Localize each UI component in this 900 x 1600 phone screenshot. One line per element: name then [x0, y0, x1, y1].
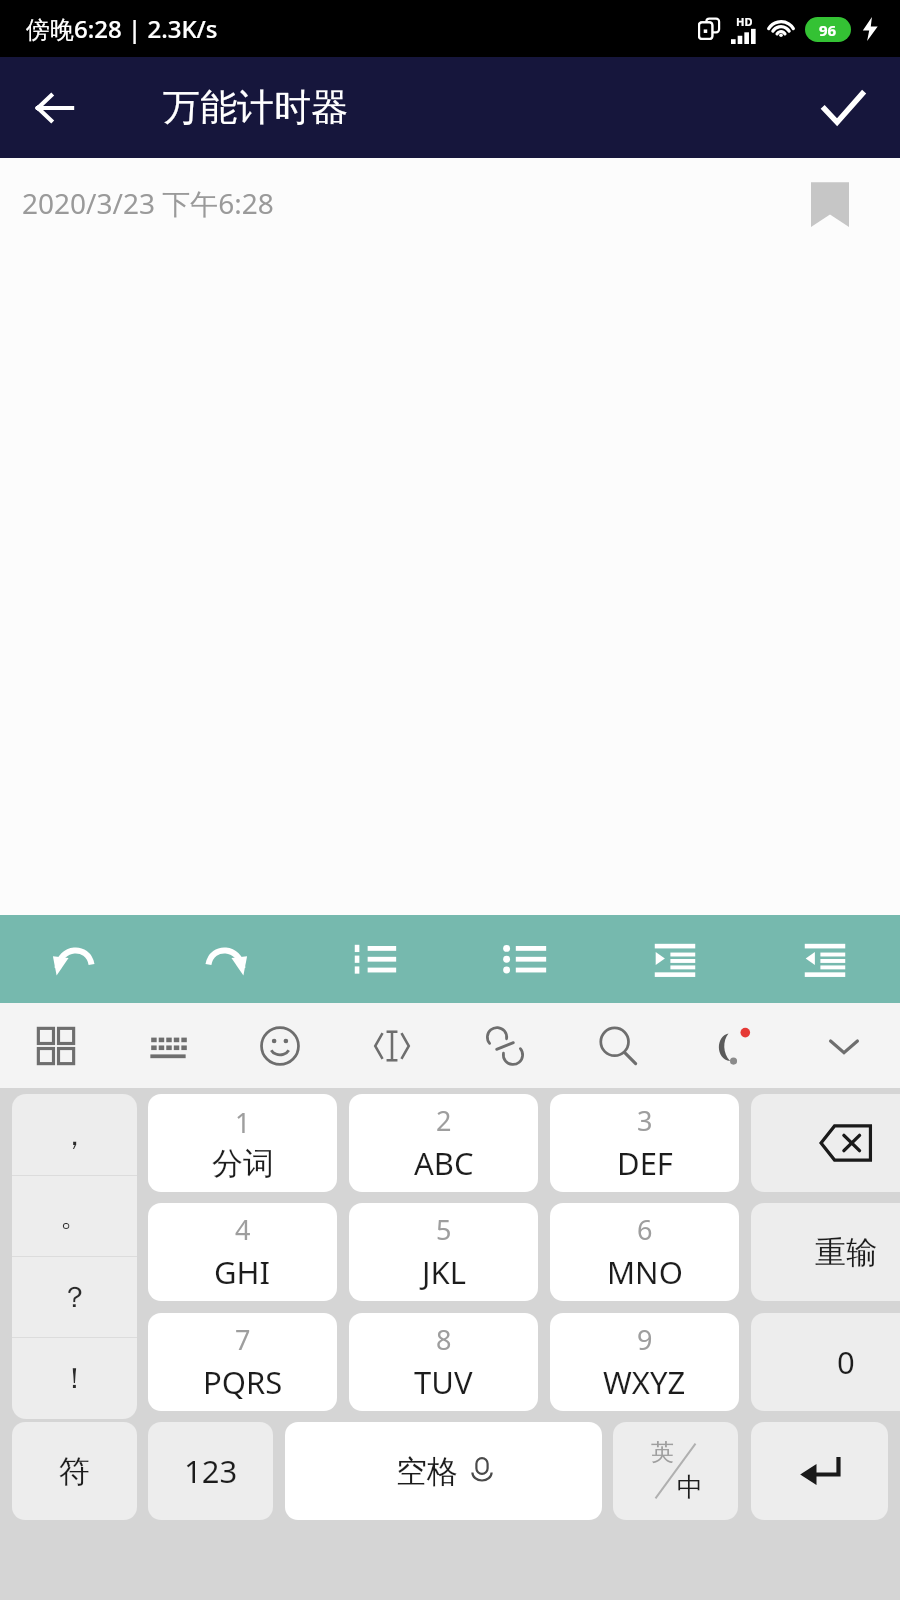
button[interactable]: Bookmark	[800, 173, 860, 233]
staticText: JKL	[422, 1251, 466, 1293]
staticText: 123	[184, 1450, 238, 1492]
staticText: 1	[235, 1104, 251, 1141]
button[interactable]: 符	[12, 1422, 137, 1520]
button[interactable]: Hide keyboard	[787, 1003, 900, 1088]
button[interactable]: 3	[550, 1094, 739, 1192]
button[interactable]: Bullet list	[450, 915, 600, 1003]
button[interactable]: 4	[148, 1203, 337, 1301]
button[interactable]: 9	[550, 1313, 739, 1411]
button[interactable]: Back	[20, 73, 90, 143]
staticText: MNO	[607, 1251, 683, 1293]
staticText: 英	[651, 1438, 674, 1467]
button[interactable]: 8	[349, 1313, 538, 1411]
staticText: 5	[436, 1211, 452, 1248]
staticText: GHI	[214, 1251, 271, 1293]
staticText: DEF	[617, 1142, 673, 1184]
button[interactable]: Clipboard	[448, 1003, 561, 1088]
staticText: ABC	[414, 1142, 474, 1184]
staticText: 96	[819, 20, 837, 40]
button[interactable]: ？	[12, 1257, 137, 1338]
staticText: 重输	[815, 1233, 877, 1272]
staticText: 8	[436, 1321, 452, 1358]
staticText: 中	[677, 1471, 703, 1504]
staticText: 空格	[396, 1452, 458, 1491]
button[interactable]: 5	[349, 1203, 538, 1301]
staticText: 符	[59, 1452, 90, 1491]
button[interactable]: 空格	[285, 1422, 602, 1520]
staticText: 傍晚6:28 | 2.3K/s	[26, 12, 218, 45]
button[interactable]: 0	[751, 1313, 900, 1411]
button[interactable]: Indent	[600, 915, 750, 1003]
button[interactable]: Search	[561, 1003, 674, 1088]
button[interactable]: Redo	[150, 915, 300, 1003]
button[interactable]: 7	[148, 1313, 337, 1411]
button[interactable]: ，	[12, 1094, 137, 1176]
staticText: WXYZ	[603, 1361, 686, 1403]
staticText: 2	[436, 1102, 452, 1139]
staticText: HD	[736, 14, 753, 29]
staticText: TUV	[414, 1361, 473, 1403]
button[interactable]: Night mode	[674, 1003, 787, 1088]
staticText: ？	[60, 1279, 89, 1316]
button[interactable]: 重输	[751, 1203, 900, 1301]
staticText: 7	[235, 1321, 251, 1358]
button[interactable]: Keyboard layout	[112, 1003, 224, 1088]
button[interactable]: 6	[550, 1203, 739, 1301]
button[interactable]: Enter	[751, 1422, 888, 1520]
button[interactable]: Numbered list	[300, 915, 450, 1003]
button[interactable]: 。	[12, 1176, 137, 1257]
button[interactable]: Switch language	[613, 1422, 738, 1520]
staticText: 。	[60, 1198, 89, 1235]
button[interactable]: Outdent	[750, 915, 900, 1003]
staticText: ，	[60, 1117, 89, 1154]
button[interactable]: 1	[148, 1094, 337, 1192]
button[interactable]: Undo	[0, 915, 150, 1003]
button[interactable]: 123	[148, 1422, 273, 1520]
button[interactable]: Save	[808, 73, 878, 143]
staticText: 分词	[212, 1144, 274, 1183]
staticText: 4	[235, 1211, 251, 1248]
staticText: 万能计时器	[163, 84, 348, 131]
button[interactable]: Delete	[751, 1094, 900, 1192]
button[interactable]: Panels	[0, 1003, 112, 1088]
button[interactable]: ！	[12, 1338, 137, 1419]
button[interactable]: Emoji	[224, 1003, 336, 1088]
staticText: 3	[637, 1102, 653, 1139]
button[interactable]: 2	[349, 1094, 538, 1192]
button[interactable]: Cursor	[336, 1003, 448, 1088]
staticText: 6	[637, 1211, 653, 1248]
staticText: 0	[837, 1341, 855, 1383]
staticText: 9	[637, 1321, 653, 1358]
staticText: 2020/3/23 下午6:28	[22, 184, 274, 222]
staticText: ！	[60, 1360, 89, 1397]
staticText: PQRS	[203, 1361, 283, 1403]
